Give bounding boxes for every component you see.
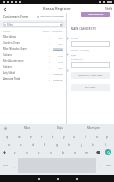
button[interactable]: m xyxy=(81,148,93,156)
button[interactable] xyxy=(71,41,110,47)
button[interactable]: f xyxy=(39,140,51,148)
staticText: r xyxy=(41,134,43,138)
staticText: f xyxy=(44,142,46,146)
staticText: NAME xyxy=(3,30,40,33)
button[interactable]: v xyxy=(45,148,57,156)
button[interactable]: x xyxy=(21,148,33,156)
button[interactable]: next xyxy=(103,156,114,175)
staticText: 4.050,00 xyxy=(53,72,63,75)
staticText: p xyxy=(106,134,109,138)
button[interactable]: Garden Onan xyxy=(3,40,63,46)
button[interactable]: Backspace xyxy=(93,148,102,156)
staticText: NAME xyxy=(71,37,78,40)
staticText: PRICE / UNIT(S) xyxy=(71,49,90,52)
staticText: h xyxy=(68,142,71,146)
button[interactable]: Shift xyxy=(0,148,9,156)
staticText: Garden Onan xyxy=(3,41,40,45)
staticText: m xyxy=(85,150,89,154)
button[interactable]: Mbe Nkwobe Ikam xyxy=(3,46,63,52)
button[interactable]: y xyxy=(58,132,69,140)
staticText: 7 xyxy=(40,78,50,81)
staticText: 1 xyxy=(40,42,50,45)
button[interactable]: i xyxy=(80,132,91,140)
button[interactable]: Enter xyxy=(102,148,114,156)
staticText: Amount Total xyxy=(3,77,40,81)
staticText: 0,00 xyxy=(71,53,76,56)
button[interactable]: r xyxy=(36,132,47,140)
button[interactable]: w xyxy=(13,132,25,140)
staticText: 1 xyxy=(40,54,50,57)
button[interactable]: Mba xyxy=(10,124,44,132)
button[interactable]: Back xyxy=(2,6,8,12)
button[interactable]: Sabara xyxy=(3,52,63,58)
button[interactable]: g xyxy=(51,140,63,148)
staticText: next xyxy=(106,164,111,167)
staticText: Atiy Ndidi xyxy=(3,71,40,75)
button[interactable]: q xyxy=(1,132,13,140)
staticText: Baju xyxy=(57,126,64,130)
staticText: k xyxy=(92,142,94,146)
button[interactable]: o xyxy=(91,132,102,140)
staticText: 1 xyxy=(40,72,50,75)
staticText: o xyxy=(96,134,98,138)
button[interactable] xyxy=(71,62,110,68)
button[interactable]: Amount Total xyxy=(3,76,63,82)
staticText: 1 xyxy=(40,66,50,69)
button[interactable]: j xyxy=(75,140,87,148)
staticText: Sabara xyxy=(3,53,40,57)
button[interactable]: a xyxy=(3,140,15,148)
button[interactable]: n xyxy=(69,148,81,156)
staticText: 0,00 xyxy=(58,54,63,57)
button[interactable]: Sabara xyxy=(3,64,63,70)
button[interactable]: e xyxy=(25,132,36,140)
staticText: n xyxy=(74,150,77,154)
staticText: ADD NEW CUSTOMER xyxy=(40,15,64,18)
staticText: 1 xyxy=(40,60,50,63)
button[interactable]: NEW ORDER xyxy=(81,12,110,17)
staticText: x xyxy=(26,150,28,154)
button[interactable]: Voice input xyxy=(0,124,10,132)
staticText: TOTAL xyxy=(40,30,50,33)
button[interactable]: ADD NEW CUSTOMER xyxy=(37,15,64,18)
button[interactable]: CHECK IN / ADD ITEM xyxy=(71,72,110,79)
button[interactable]: Atiy Ndidi xyxy=(3,70,63,76)
button[interactable]: PAY NOW xyxy=(71,84,110,91)
button[interactable]: Home xyxy=(48,175,67,182)
staticText: u xyxy=(73,134,76,138)
staticText: 0,00 xyxy=(58,66,63,69)
staticText: 1 xyxy=(40,48,50,51)
button[interactable]: ?123 xyxy=(0,156,11,175)
button[interactable]: u xyxy=(69,132,80,140)
button[interactable]: Mie Akuderexan xyxy=(3,58,63,64)
button[interactable]: c xyxy=(33,148,45,156)
button[interactable]: Mberiyan xyxy=(77,124,110,132)
button[interactable]: h xyxy=(63,140,75,148)
button[interactable]: Recent apps xyxy=(67,175,86,182)
button[interactable]: Baju xyxy=(44,124,77,132)
button[interactable]: p xyxy=(102,132,113,140)
staticText: v xyxy=(50,150,52,154)
button[interactable]: t xyxy=(47,132,58,140)
button[interactable]: Back xyxy=(29,175,48,182)
button[interactable]: l xyxy=(99,140,111,148)
staticText: Mie Akuderexan xyxy=(3,59,40,63)
staticText: 1 xyxy=(40,36,50,39)
staticText: PAY NOW xyxy=(85,86,96,89)
button[interactable]: k xyxy=(87,140,99,148)
button[interactable]: Mbe Akwa xyxy=(3,34,63,40)
staticText: d xyxy=(32,142,35,146)
button[interactable]: s xyxy=(15,140,27,148)
staticText: NEW ORDER xyxy=(88,13,104,16)
staticText: j xyxy=(81,142,82,146)
staticText: c xyxy=(38,150,40,154)
staticText: Mbe Akwa xyxy=(3,35,40,39)
button[interactable]: Shift xyxy=(105,7,112,11)
button[interactable]: b xyxy=(57,148,69,156)
staticText: l xyxy=(105,142,106,146)
button[interactable]: Filter xyxy=(3,22,63,27)
button[interactable]: d xyxy=(27,140,39,148)
button[interactable]: z xyxy=(9,148,21,156)
